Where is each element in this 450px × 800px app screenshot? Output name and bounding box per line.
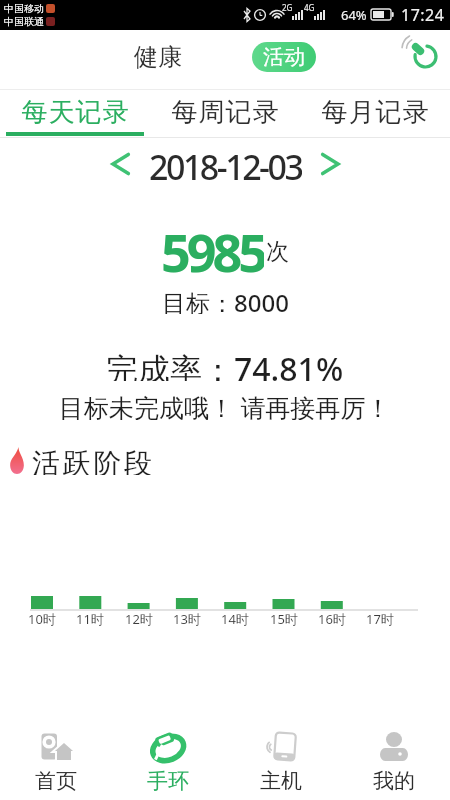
button[interactable]: 主机	[224, 712, 337, 800]
staticText: 每周记录	[171, 96, 279, 129]
button[interactable]: 手环	[112, 712, 224, 800]
staticText: 2018-12-03	[149, 144, 302, 184]
staticText: 次	[266, 237, 289, 266]
button[interactable]: 每天记录	[0, 90, 150, 134]
staticText: 目标：8000	[162, 286, 289, 314]
staticText: 2G	[282, 2, 293, 13]
button[interactable]: 首页	[0, 712, 112, 800]
staticText: 中国联通	[4, 15, 44, 28]
staticText: 活跃阶段	[31, 446, 153, 475]
staticText: 活动	[263, 44, 305, 70]
staticText: 10时	[28, 610, 56, 628]
button[interactable]: 我的	[337, 712, 450, 800]
staticText: 首页	[35, 768, 77, 794]
staticText: 17:24	[401, 4, 445, 26]
staticText: 17时	[366, 610, 394, 628]
staticText: 13时	[173, 610, 201, 628]
staticText: 我的	[373, 768, 415, 794]
staticText: 15时	[270, 610, 298, 628]
button[interactable]: 每月记录	[300, 90, 450, 134]
staticText: 16时	[318, 610, 346, 628]
staticText: 中国移动	[4, 2, 44, 15]
button[interactable]: 每周记录	[150, 90, 300, 134]
button[interactable]: 健康	[134, 42, 182, 72]
staticText: 健康	[134, 42, 182, 72]
button[interactable]	[404, 36, 438, 70]
staticText: 主机	[260, 768, 302, 794]
staticText: 目标未完成哦！ 请再接再厉！	[59, 390, 391, 420]
staticText: 手环	[147, 768, 189, 794]
staticText: 64%	[341, 6, 367, 24]
staticText: 每天记录	[21, 96, 129, 129]
staticText: 5985	[161, 216, 264, 274]
staticText: 每月记录	[321, 96, 429, 129]
staticText: 4G	[304, 2, 315, 13]
button[interactable]	[109, 152, 131, 176]
button[interactable]: 活动	[252, 42, 316, 72]
button[interactable]	[320, 152, 342, 176]
staticText: 14时	[221, 610, 249, 628]
staticText: 11时	[76, 610, 104, 628]
staticText: 12时	[125, 610, 153, 628]
staticText: 完成率：74.81%	[106, 347, 344, 381]
